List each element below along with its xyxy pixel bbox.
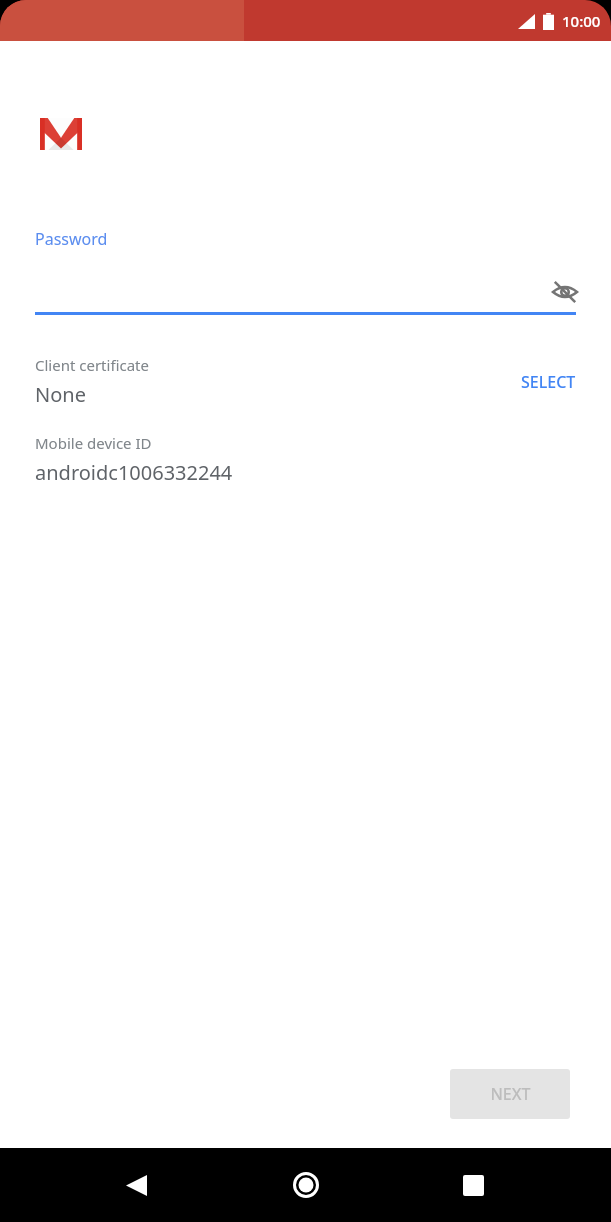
staticText: Client certificate (35, 355, 149, 375)
button[interactable]: Back (114, 1163, 158, 1207)
staticText: SELECT (521, 371, 576, 393)
staticText: Mobile device ID (35, 433, 152, 453)
staticText: androidc1006332244 (35, 459, 233, 486)
button[interactable]: SELECT (521, 371, 576, 393)
staticText: Password (35, 228, 108, 250)
button[interactable]: Client certificate (0, 355, 611, 408)
button[interactable]: Home (284, 1163, 328, 1207)
staticText: NEXT (490, 1083, 531, 1105)
staticText: None (35, 381, 86, 408)
staticText: 10:00 (562, 11, 601, 31)
button[interactable]: Recents (451, 1163, 495, 1207)
button[interactable]: Show password (549, 276, 581, 308)
button[interactable]: Show password (0, 272, 611, 312)
button[interactable]: NEXT (450, 1069, 570, 1119)
